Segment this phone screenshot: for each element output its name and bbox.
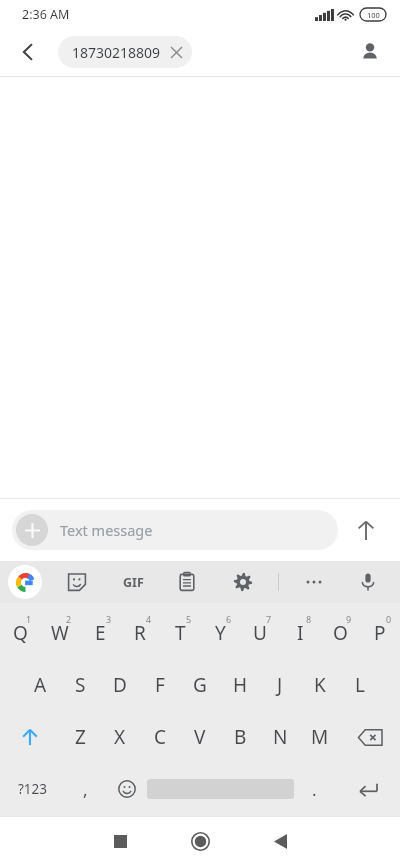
staticText: U <box>253 620 267 646</box>
button[interactable]: Add attachment <box>16 514 48 546</box>
button[interactable]: Stickers <box>60 565 94 599</box>
staticText: N <box>273 724 288 750</box>
button[interactable]: Google search <box>8 565 42 599</box>
staticText: 2:36 AM <box>22 6 70 23</box>
button[interactable]: Back <box>8 32 48 72</box>
button[interactable]: B <box>220 711 260 763</box>
button[interactable]: Emoji <box>106 763 147 815</box>
button[interactable]: R <box>120 607 160 659</box>
staticText: B <box>234 724 247 750</box>
button[interactable]: K <box>300 659 340 711</box>
staticText: A <box>34 672 47 698</box>
staticText: S <box>75 672 86 698</box>
staticText: Y <box>215 620 226 646</box>
staticText: . <box>312 778 317 801</box>
button[interactable]: S <box>60 659 100 711</box>
button[interactable]: Z <box>60 711 100 763</box>
staticText: Text message <box>60 520 153 540</box>
button[interactable]: E <box>80 607 120 659</box>
button[interactable]: W <box>40 607 80 659</box>
staticText: E <box>95 620 106 646</box>
staticText: 3 <box>106 613 112 625</box>
button[interactable]: O <box>320 607 360 659</box>
staticText: , <box>83 778 88 801</box>
button[interactable]: More options <box>297 565 331 599</box>
button[interactable]: G <box>180 659 220 711</box>
button[interactable]: . <box>294 763 335 815</box>
button[interactable]: L <box>340 659 380 711</box>
button[interactable]: Contact details <box>350 32 390 72</box>
staticText: K <box>314 672 326 698</box>
staticText: I <box>297 620 304 646</box>
staticText: R <box>134 620 146 646</box>
staticText: T <box>175 620 186 646</box>
staticText: F <box>155 672 165 698</box>
button[interactable]: I <box>280 607 320 659</box>
button[interactable]: P <box>360 607 400 659</box>
button[interactable]: Add attachment <box>12 510 338 550</box>
button[interactable] <box>147 763 294 815</box>
button[interactable]: N <box>260 711 300 763</box>
button[interactable]: ?123 <box>0 763 65 815</box>
staticText: 0 <box>386 613 392 625</box>
staticText: Q <box>13 620 28 646</box>
button[interactable]: Settings <box>226 565 260 599</box>
staticText: O <box>333 620 348 646</box>
staticText: L <box>355 672 365 698</box>
staticText: 1 <box>26 613 32 625</box>
button[interactable]: J <box>260 659 300 711</box>
staticText: 2 <box>66 613 72 625</box>
staticText: 18730218809 <box>72 43 161 62</box>
button[interactable]: M <box>300 711 340 763</box>
staticText: W <box>51 620 69 646</box>
staticText: GIF <box>123 574 144 591</box>
button[interactable]: 18730218809 <box>58 36 192 68</box>
staticText: 6 <box>226 613 232 625</box>
button[interactable]: H <box>220 659 260 711</box>
button[interactable]: Shift <box>0 711 60 763</box>
staticText: J <box>277 672 283 698</box>
staticText: 8 <box>306 613 312 625</box>
staticText: G <box>193 672 207 698</box>
button[interactable]: Q <box>0 607 40 659</box>
button[interactable]: U <box>240 607 280 659</box>
staticText: V <box>194 724 206 750</box>
staticText: 100 <box>367 10 380 20</box>
button[interactable]: Home <box>172 816 228 866</box>
button[interactable]: Back <box>252 816 308 866</box>
staticText: C <box>154 724 167 750</box>
staticText: 9 <box>346 613 352 625</box>
button[interactable]: GIF <box>116 565 150 599</box>
button[interactable]: Send <box>344 508 388 552</box>
staticText: D <box>113 672 127 698</box>
button[interactable]: Enter <box>335 763 400 815</box>
button[interactable]: A <box>20 659 60 711</box>
staticText: Z <box>75 724 86 750</box>
staticText: H <box>233 672 248 698</box>
staticText: 4 <box>146 613 152 625</box>
staticText: 7 <box>266 613 272 625</box>
button[interactable]: Backspace <box>340 711 400 763</box>
staticText: 5 <box>186 613 192 625</box>
staticText: X <box>114 724 126 750</box>
staticText: M <box>311 724 329 750</box>
staticText: P <box>374 620 386 646</box>
button[interactable]: T <box>160 607 200 659</box>
button[interactable]: Recents <box>92 816 148 866</box>
button[interactable]: X <box>100 711 140 763</box>
button[interactable]: Clipboard <box>170 565 204 599</box>
button[interactable]: D <box>100 659 140 711</box>
button[interactable]: C <box>140 711 180 763</box>
staticText: ?123 <box>18 780 48 798</box>
button[interactable]: , <box>65 763 106 815</box>
button[interactable]: Y <box>200 607 240 659</box>
button[interactable]: Voice input <box>351 565 385 599</box>
button[interactable]: V <box>180 711 220 763</box>
button[interactable]: F <box>140 659 180 711</box>
